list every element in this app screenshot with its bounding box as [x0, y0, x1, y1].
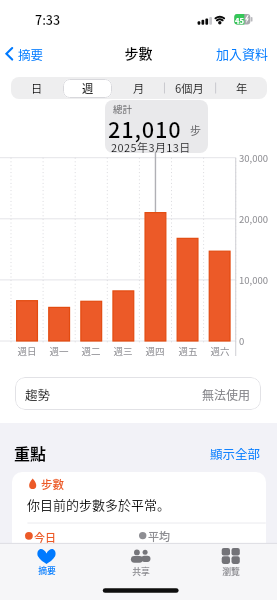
staticText: 無法使用	[202, 386, 251, 403]
staticText: 顯示全部	[210, 444, 261, 462]
button[interactable]: 顯示全部	[206, 443, 266, 461]
staticText: 21,010	[108, 113, 182, 145]
staticText: 週四	[140, 344, 170, 358]
button[interactable]	[200, 545, 261, 581]
button[interactable]	[63, 79, 112, 98]
button[interactable]	[108, 545, 169, 581]
staticText: 平均	[148, 528, 170, 544]
button[interactable]: 趨勢	[15, 377, 261, 410]
staticText: 6個月	[175, 80, 204, 96]
staticText: 共享	[111, 565, 171, 578]
staticText: 7:33	[35, 10, 61, 28]
staticText: 加入資料	[216, 44, 269, 63]
staticText: 30,000	[239, 151, 269, 165]
staticText: 45	[235, 15, 244, 26]
staticText: 瀏覽	[201, 565, 261, 578]
button[interactable]: 月	[113, 77, 164, 99]
staticText: 0	[239, 334, 245, 348]
staticText: 步數	[41, 476, 64, 493]
button[interactable]	[16, 545, 77, 581]
staticText: 日	[31, 80, 43, 96]
staticText: 週五	[173, 344, 203, 358]
button[interactable]: 年	[216, 77, 267, 99]
staticText: 週六	[205, 344, 235, 358]
staticText: 週二	[76, 344, 106, 358]
button[interactable]: 摘要	[0, 44, 55, 64]
staticText: 月	[133, 80, 145, 96]
staticText: 10,000	[239, 273, 269, 287]
button[interactable]: 日	[11, 77, 62, 99]
staticText: 步數	[0, 43, 277, 63]
staticText: 週一	[44, 344, 74, 358]
staticText: 20,000	[239, 212, 269, 226]
staticText: 週	[82, 80, 94, 96]
staticText: 趨勢	[25, 385, 51, 403]
staticText: 今日	[34, 529, 56, 545]
staticText: 步	[190, 122, 201, 138]
staticText: 你目前的步數多於平常。	[27, 495, 171, 514]
button[interactable]: 週	[62, 77, 113, 99]
button[interactable]: 加入資料	[212, 44, 274, 64]
staticText: 年	[236, 80, 248, 96]
staticText: 週三	[108, 344, 138, 358]
staticText: 摘要	[18, 45, 44, 63]
button[interactable]: 6個月	[164, 77, 215, 99]
staticText: 摘要	[17, 564, 77, 577]
staticText: 週日	[12, 344, 42, 358]
staticText: 重點	[14, 441, 47, 464]
staticText: 總計	[113, 102, 133, 116]
button[interactable]: 步數	[12, 472, 266, 600]
staticText: 2025年3月13日	[111, 139, 191, 153]
